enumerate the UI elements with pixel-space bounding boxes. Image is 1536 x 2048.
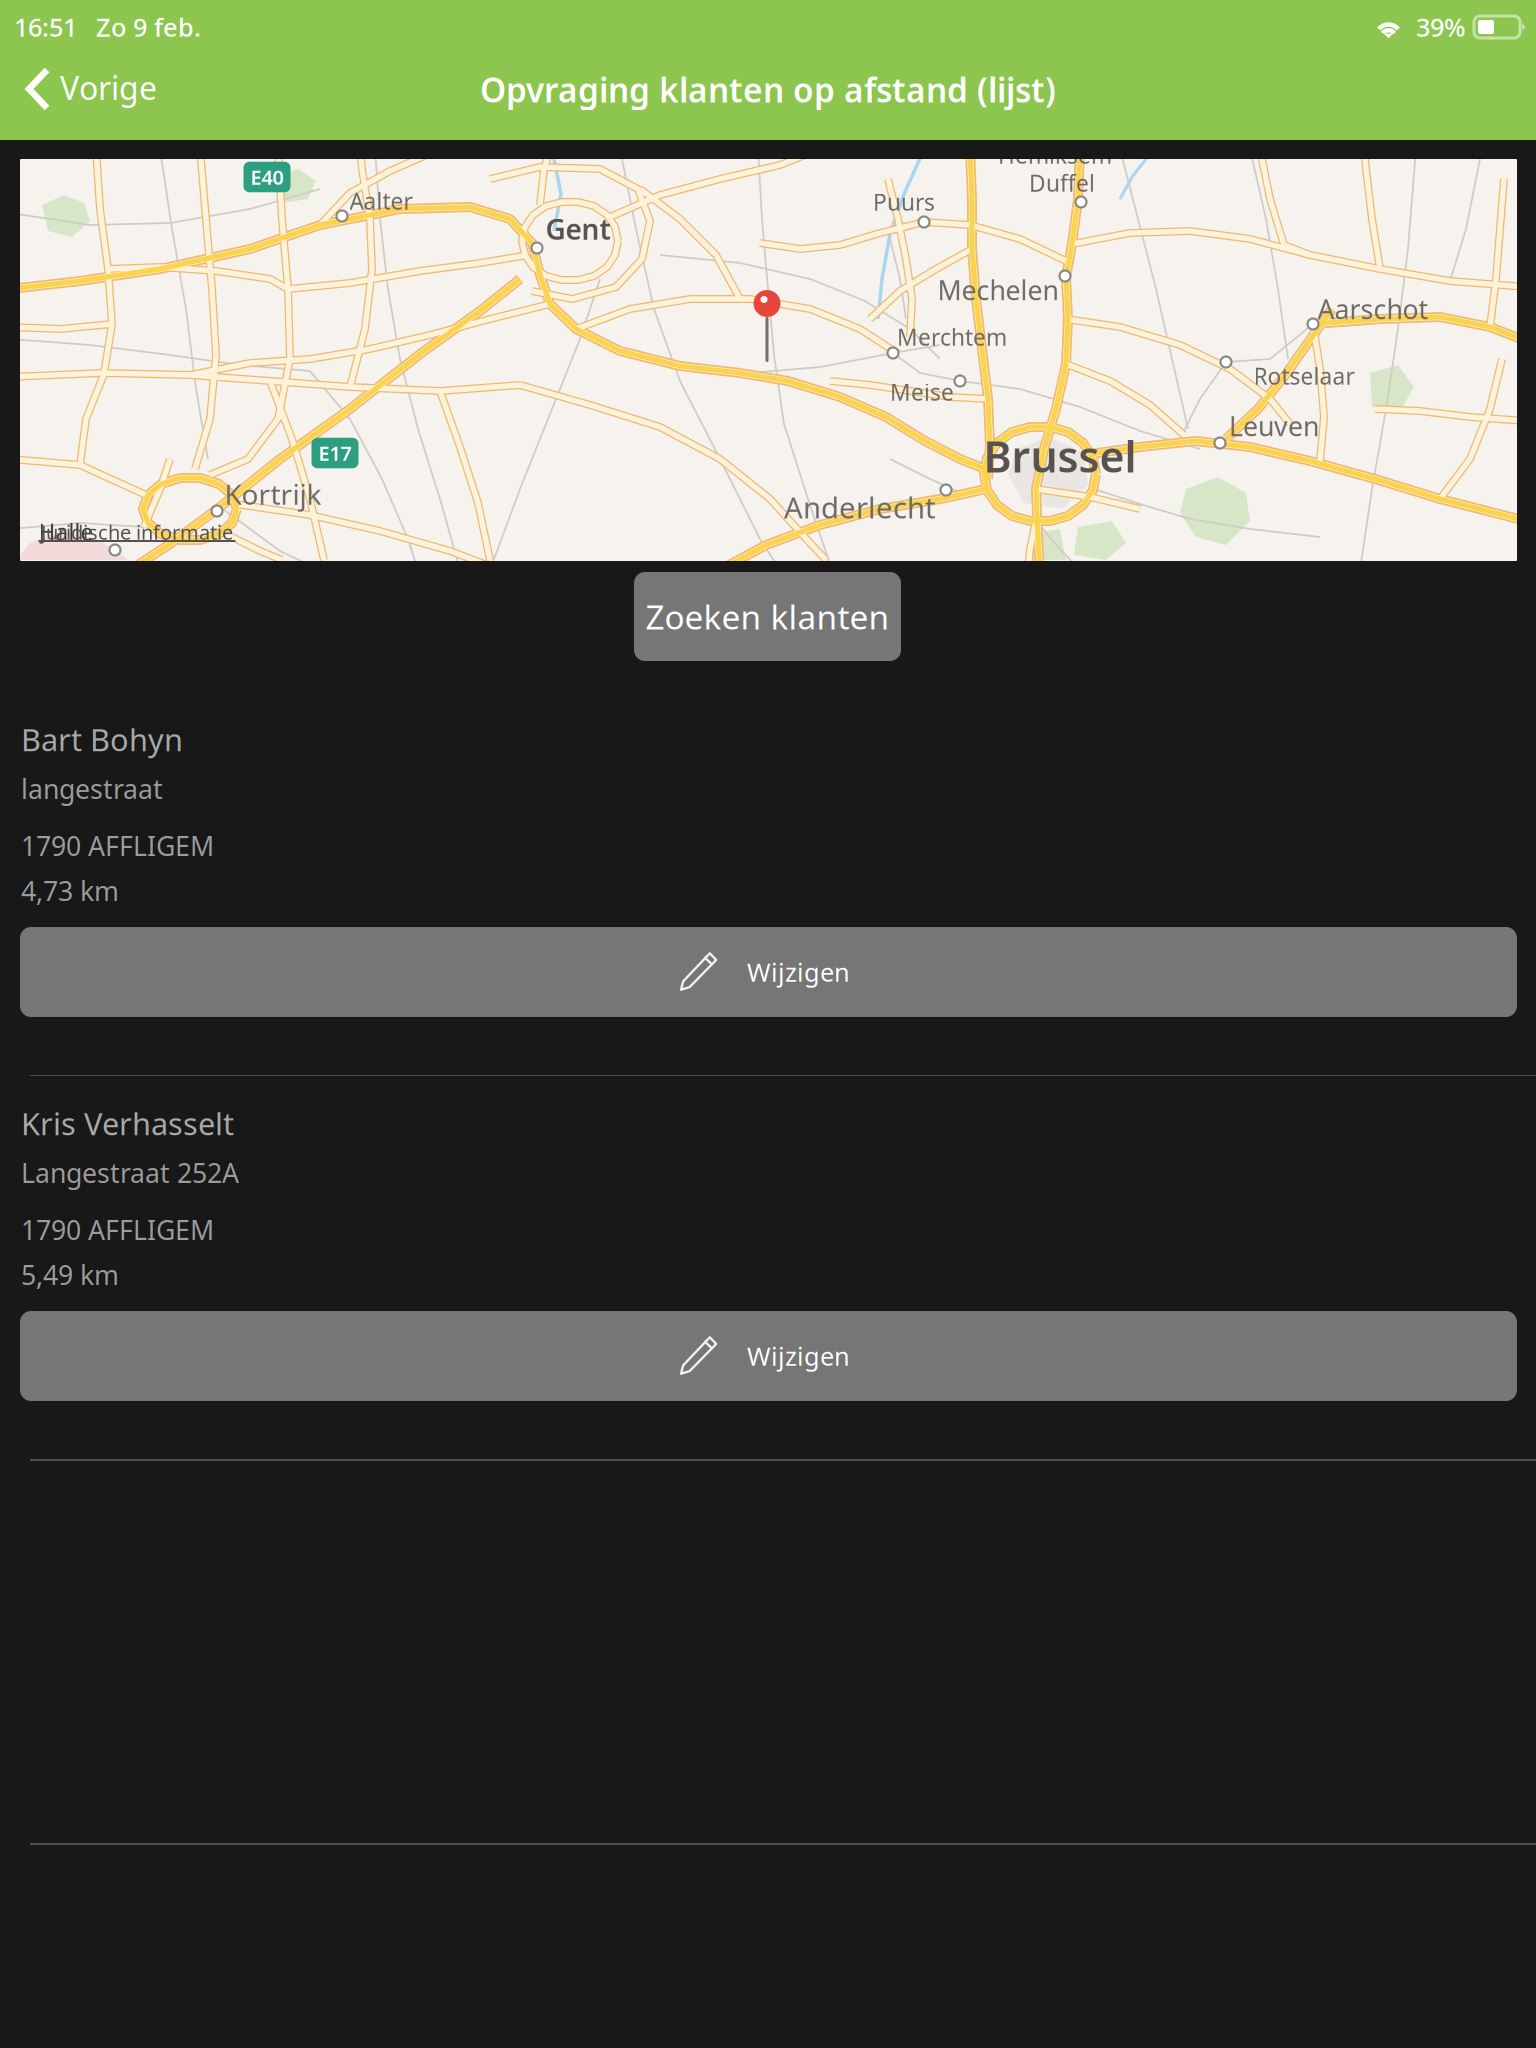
button[interactable]: Zoeken klanten (634, 572, 901, 661)
staticText: Puurs (873, 187, 935, 217)
staticText: Duffel (1029, 168, 1095, 198)
staticText: 5,49 km (21, 1257, 119, 1292)
button[interactable]: Bart Bohyn (0, 692, 1536, 916)
staticText: Bart Bohyn (21, 719, 183, 760)
staticText: Wijzigen (747, 955, 850, 989)
staticText: Wijzigen (747, 1339, 850, 1373)
staticText: Mechelen (937, 272, 1058, 308)
staticText: Zo 9 feb. (96, 10, 201, 44)
staticText: Merchtem (897, 322, 1007, 352)
button[interactable]: Vorige (0, 52, 181, 123)
staticText: 1790 AFFLIGEM (21, 828, 214, 863)
staticText: Zoeken klanten (645, 594, 889, 639)
staticText: Gent (545, 210, 610, 248)
staticText: Vorige (60, 66, 157, 109)
staticText: Hemiksem (998, 140, 1112, 170)
staticText: Juridische informatie (41, 519, 233, 545)
staticText: 16:51 (14, 10, 77, 44)
staticText: Opvraging klanten op afstand (lijst) (480, 67, 1056, 112)
staticText: E17 (318, 440, 351, 466)
staticText: Kortrijk (224, 475, 321, 513)
staticText: Brussel (983, 428, 1136, 484)
staticText: 4,73 km (21, 873, 119, 908)
staticText: Langestraat 252A (21, 1155, 239, 1190)
button[interactable]: Wijzigen (20, 1311, 1517, 1401)
staticText: E40 (250, 164, 283, 190)
staticText: Kris Verhasselt (21, 1103, 234, 1144)
staticText: Rotselaar (1253, 361, 1354, 391)
staticText: Aarschot (1317, 291, 1428, 327)
button[interactable]: Kris Verhasselt (0, 1076, 1536, 1300)
button[interactable]: Kaart (20, 159, 1517, 561)
staticText: 39% (1416, 10, 1466, 44)
staticText: Anderlecht (784, 487, 936, 526)
button[interactable]: Wijzigen (20, 927, 1517, 1017)
staticText: Aalter (349, 186, 412, 216)
staticText: langestraat (21, 771, 163, 806)
staticText: Halle (38, 517, 93, 547)
staticText: Meise (890, 377, 954, 407)
staticText: Leuven (1229, 408, 1319, 444)
staticText: 1790 AFFLIGEM (21, 1212, 214, 1247)
